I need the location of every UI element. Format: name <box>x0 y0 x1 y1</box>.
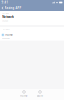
staticText: Home <box>20 94 28 98</box>
staticText: Network <box>2 15 14 19</box>
button[interactable]: Back <box>1 5 4 11</box>
button[interactable]: NETWORK <box>0 27 64 41</box>
staticText: Home <box>5 33 13 37</box>
staticText: More <box>36 94 43 98</box>
staticText: Connected <box>2 38 10 39</box>
button[interactable]: Home <box>16 89 32 99</box>
staticText: SETTINGS <box>2 12 9 14</box>
staticText: Racing APP <box>5 6 22 10</box>
staticText: NETWORK <box>3 28 10 30</box>
button[interactable]: More <box>32 89 48 99</box>
staticText: 9:41 <box>2 1 9 4</box>
